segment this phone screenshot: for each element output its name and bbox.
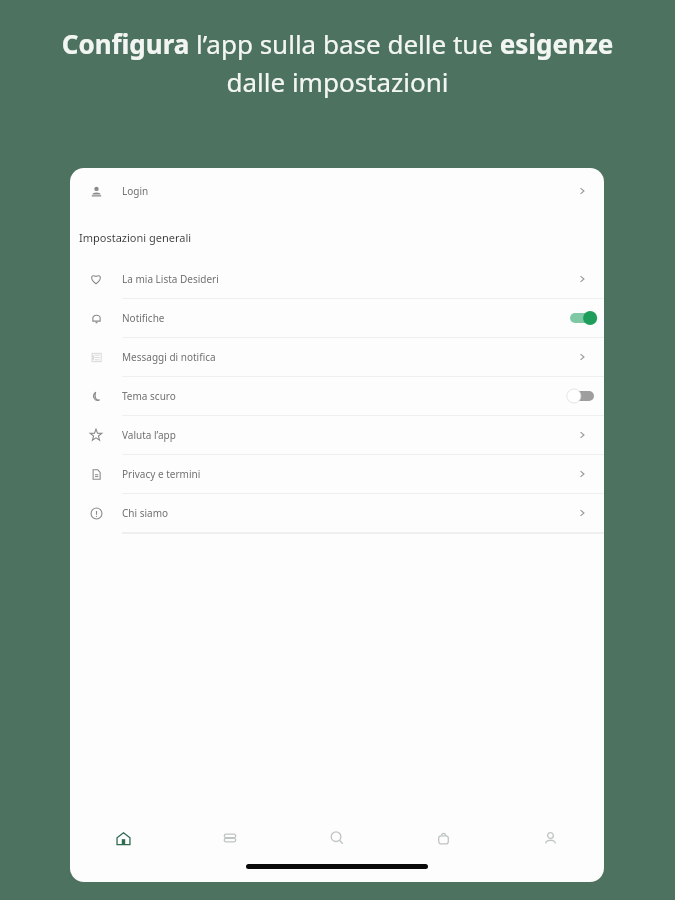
staticText: Chi siamo <box>122 506 560 520</box>
button[interactable]: Categories <box>176 816 283 860</box>
staticText: Configura l’app sulla base delle tue esi… <box>18 26 657 99</box>
staticText: Impostazioni generali <box>79 230 192 245</box>
button[interactable]: Chi siamo <box>70 494 604 532</box>
button[interactable]: Cart <box>390 816 497 860</box>
button[interactable]: Home <box>70 816 176 860</box>
button[interactable]: Account <box>497 816 604 860</box>
staticText: Notifiche <box>122 311 560 325</box>
button[interactable]: La mia Lista Desideri <box>70 260 604 298</box>
button[interactable]: Tema scuro <box>70 377 604 415</box>
staticText: La mia Lista Desideri <box>122 272 560 286</box>
button[interactable]: Valuta l’app <box>70 416 604 454</box>
button[interactable]: Login <box>70 168 604 214</box>
staticText: Privacy e termini <box>122 467 560 481</box>
staticText: Login <box>122 184 560 198</box>
button[interactable]: Privacy e termini <box>70 455 604 493</box>
button[interactable]: Messaggi di notifica <box>70 338 604 376</box>
button[interactable]: Search <box>283 816 390 860</box>
staticText: Messaggi di notifica <box>122 350 560 364</box>
button[interactable]: Notifiche <box>70 299 604 337</box>
staticText: Valuta l’app <box>122 428 560 442</box>
staticText: Tema scuro <box>122 389 560 403</box>
